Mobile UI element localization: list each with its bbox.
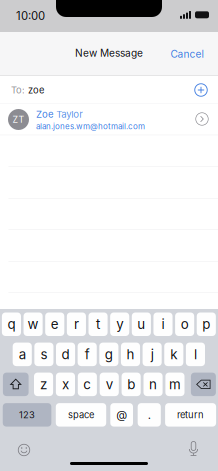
button[interactable]: z [34,373,53,396]
button[interactable]: Cancel [164,41,210,67]
button[interactable]: Shift [3,373,29,396]
button[interactable]: m [165,373,184,396]
button[interactable]: d [56,343,75,366]
button[interactable]: x [56,373,75,396]
button[interactable]: n [143,373,163,396]
staticText: d [61,346,69,362]
button[interactable]: Delete [191,373,216,396]
staticText: Cancel [170,48,203,60]
staticText: l [194,346,197,362]
staticText: To: [11,84,25,96]
staticText: New Message [75,47,143,59]
button[interactable]: v [100,373,119,396]
button[interactable]: l [186,343,205,366]
staticText: v [106,376,113,392]
staticText: f [85,346,90,362]
button[interactable]: y [110,312,129,336]
staticText: 10:00 [16,9,45,23]
button[interactable]: . [138,403,161,427]
staticText: z [40,376,47,392]
staticText: b [127,376,135,392]
staticText: t [96,316,100,332]
staticText: space [68,409,94,420]
staticText: s [40,346,47,362]
staticText: u [137,316,145,332]
button[interactable]: 123 [3,403,51,427]
staticText: e [51,316,59,332]
staticText: zoe [25,84,44,96]
staticText: n [149,376,157,392]
staticText: ZT [12,114,24,125]
staticText: j [151,346,154,362]
button[interactable]: t [88,312,108,336]
button[interactable]: j [143,343,162,366]
button[interactable]: k [164,343,183,366]
staticText: return [177,409,204,420]
staticText: alan.jones.wm@hotmail.com [36,122,145,131]
staticText: k [170,346,177,362]
button[interactable]: q [2,312,21,336]
button[interactable]: f [78,343,97,366]
button[interactable]: u [132,312,151,336]
staticText: 123 [19,409,35,420]
button[interactable]: return [165,403,216,427]
button[interactable]: Add recipient [191,80,211,100]
staticText: y [116,316,123,332]
staticText: p [202,316,210,332]
staticText: c [83,376,91,392]
staticText: x [62,376,69,392]
staticText: q [7,316,15,332]
staticText: g [105,346,113,362]
staticText: Zoe [36,108,54,120]
staticText: . [148,408,151,422]
button[interactable]: Dictate [186,441,201,457]
staticText: r [74,316,79,332]
button[interactable]: ZT [0,104,218,135]
staticText: i [161,316,164,332]
button[interactable]: Emoji [16,442,32,458]
staticText: h [126,346,134,362]
staticText: o [181,316,189,332]
button[interactable]: h [121,343,140,366]
staticText: a [19,346,26,362]
button[interactable]: c [78,373,97,396]
staticText: w [28,316,39,332]
button[interactable]: p [197,312,216,336]
button[interactable]: r [67,312,86,336]
button[interactable]: To: [11,76,191,104]
button[interactable]: o [175,312,194,336]
button[interactable]: Contact details [192,109,212,129]
button[interactable]: g [99,343,118,366]
button[interactable]: @ [110,403,133,427]
staticText: Taylor [56,108,83,120]
button[interactable]: e [45,312,64,336]
button[interactable]: a [13,343,32,366]
staticText: m [169,376,181,392]
staticText: @ [116,408,127,422]
button[interactable]: i [153,312,172,336]
button[interactable]: w [23,312,43,336]
button[interactable]: s [34,343,53,366]
button[interactable]: b [122,373,141,396]
button[interactable]: space [56,403,106,427]
